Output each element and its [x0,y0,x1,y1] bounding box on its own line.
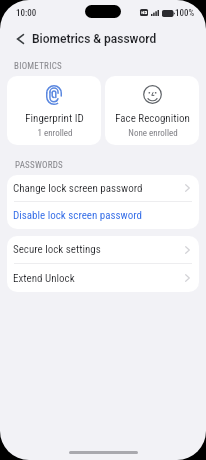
staticText: Change lock screen password [13,182,143,195]
staticText: Fingerprint ID [25,112,84,125]
staticText: 1 enrolled [37,128,73,139]
button[interactable]: Secure lock settings [7,236,199,263]
button[interactable]: Back [11,30,29,48]
staticText: Face Recognition [115,112,190,125]
button[interactable]: Fingerprint ID [7,76,101,145]
staticText: 100% [175,8,195,19]
staticText: PASSWORDS [15,160,64,171]
staticText: BIOMETRICS [14,61,62,72]
staticText: None enrolled [128,128,178,139]
staticText: Secure lock settings [13,243,101,256]
staticText: 10:00 [16,8,37,19]
staticText: Extend Unlock [13,272,75,285]
button[interactable]: Change lock screen password [7,175,199,201]
button[interactable]: Face Recognition [105,76,199,145]
button[interactable]: Extend Unlock [7,264,199,292]
staticText: Disable lock screen password [13,209,142,222]
staticText: Biometrics & password [32,32,157,46]
button[interactable]: Disable lock screen password [7,202,199,229]
